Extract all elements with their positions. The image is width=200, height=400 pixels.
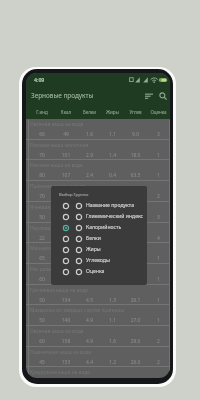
staticText: 3.0: [78, 193, 101, 200]
staticText: 27.0: [124, 317, 147, 324]
staticText: 1: [147, 255, 170, 262]
staticText: Белки: [78, 109, 101, 115]
staticText: 63.5: [124, 172, 147, 179]
staticText: 45: [30, 359, 54, 366]
staticText: 1: [147, 152, 170, 159]
staticText: 2: [147, 338, 170, 345]
staticText: 1.4: [101, 152, 124, 159]
staticText: 3: [147, 214, 170, 221]
staticText: Гречневая каша на воде: [30, 287, 88, 294]
staticText: 1.3: [101, 297, 124, 304]
staticText: 158: [54, 338, 78, 345]
staticText: 4: [147, 235, 170, 242]
staticText: Овсяная каша на воде: [30, 121, 84, 128]
staticText: 26.1: [124, 297, 147, 304]
staticText: Кукурузная каша на воде: [30, 369, 90, 376]
staticText: 9.0: [124, 131, 147, 138]
staticText: 98: [54, 255, 78, 262]
staticText: Рисовая каша молочная: [30, 142, 89, 149]
button[interactable]: Углеводы: [51, 255, 147, 266]
staticText: Пшённая каша на воде: [30, 183, 86, 190]
staticText: 0.4: [101, 172, 124, 179]
button[interactable]: Белки: [51, 233, 147, 244]
staticText: Белки: [86, 235, 101, 242]
staticText: 2.4: [78, 172, 101, 179]
staticText: 153: [54, 359, 78, 366]
staticText: 29.0: [124, 338, 147, 345]
staticText: 1: [147, 297, 170, 304]
button[interactable]: Оценка: [51, 266, 147, 277]
staticText: Углев: [124, 109, 147, 115]
button[interactable]: Калорийность: [51, 222, 147, 233]
staticText: Манная каша на молоке: [30, 245, 89, 252]
staticText: Жиры: [101, 109, 124, 115]
staticText: 70: [30, 193, 54, 200]
staticText: 1: [147, 172, 170, 179]
staticText: 76: [54, 214, 78, 221]
staticText: 1.2: [101, 359, 124, 366]
staticText: 109: [54, 235, 78, 242]
staticText: 3.0: [78, 255, 101, 262]
staticText: 49: [54, 131, 78, 138]
staticText: Овсяная каша на воде: [30, 328, 84, 335]
staticText: Макароны из твёрдых сортов пшеницы: [30, 307, 125, 314]
staticText: Углеводы: [86, 257, 110, 264]
staticText: 22: [30, 235, 54, 242]
staticText: 60: [30, 276, 54, 283]
staticText: 134: [54, 297, 78, 304]
staticText: 1.1: [101, 317, 124, 324]
staticText: 4:09: [34, 76, 45, 83]
staticText: Г.инд: [30, 109, 54, 115]
staticText: Оценка: [86, 268, 105, 275]
staticText: Оценка: [147, 109, 170, 115]
staticText: 15.7: [124, 214, 147, 221]
staticText: Пшеничная каша на воде: [30, 349, 92, 356]
staticText: 2: [147, 359, 170, 366]
button[interactable]: Гликемический индекс: [51, 211, 147, 222]
staticText: 3: [147, 131, 170, 138]
staticText: 4.9: [78, 338, 101, 345]
staticText: 90: [54, 193, 78, 200]
staticText: Ккал: [54, 109, 78, 115]
staticText: 1.1: [101, 131, 124, 138]
staticText: 2: [147, 193, 170, 200]
staticText: Зерновые продукты: [31, 91, 94, 100]
staticText: Выбор Группы: [59, 192, 89, 198]
staticText: 3.2: [101, 255, 124, 262]
staticText: 2.9: [78, 152, 101, 159]
staticText: 1: [147, 317, 170, 324]
staticText: Название продукта: [86, 202, 134, 209]
staticText: 80: [30, 172, 54, 179]
staticText: 0.3: [101, 214, 124, 221]
staticText: 4.5: [78, 297, 101, 304]
button[interactable]: Search: [157, 90, 169, 102]
button[interactable]: Жиры: [51, 244, 147, 255]
staticText: 3.1: [78, 235, 101, 242]
staticText: Рисовая каша на воде: [30, 162, 83, 169]
staticText: Перловая каша на воде: [30, 225, 87, 232]
staticText: Ячневая каша на воде: [30, 204, 84, 211]
button[interactable]: Filter: [143, 90, 155, 102]
staticText: Жиры: [86, 246, 101, 253]
staticText: 18.0: [124, 152, 147, 159]
staticText: Рис шлифованный отварной: [30, 266, 99, 273]
staticText: 65: [30, 255, 54, 262]
staticText: 50: [30, 214, 54, 221]
staticText: 50: [30, 297, 54, 304]
staticText: 50: [30, 317, 54, 324]
staticText: Гликемический индекс: [86, 213, 144, 220]
staticText: 101: [54, 152, 78, 159]
button[interactable]: Название продукта: [51, 200, 147, 211]
staticText: 4.9: [78, 317, 101, 324]
staticText: 1.6: [78, 131, 101, 138]
staticText: 4.4: [78, 359, 101, 366]
staticText: 107: [54, 172, 78, 179]
